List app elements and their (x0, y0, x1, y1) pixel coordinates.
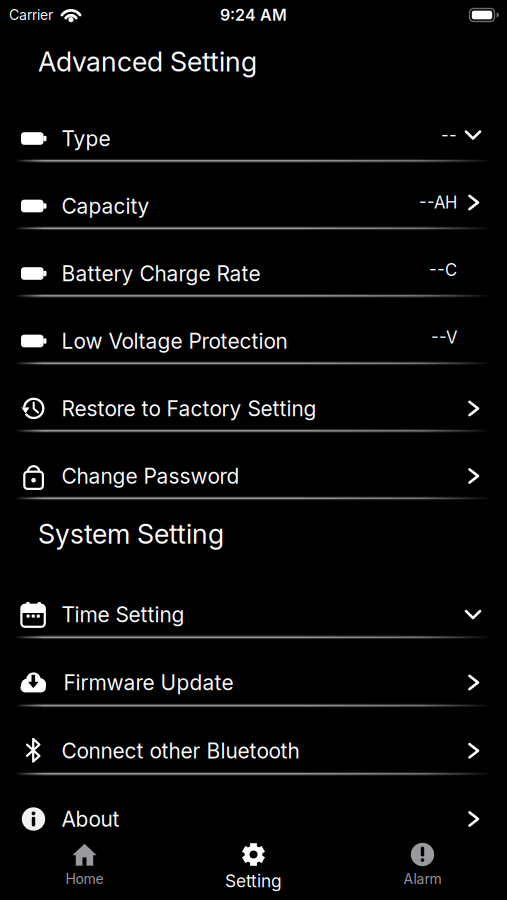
staticText: Setting (225, 870, 282, 891)
button[interactable]: Type (0, 93, 507, 161)
staticText: Connect other Bluetooth (61, 738, 299, 763)
button[interactable]: Change Password (0, 431, 507, 498)
staticText: --V (431, 327, 457, 348)
button[interactable]: Capacity (0, 161, 507, 228)
staticText: Battery Charge Rate (61, 261, 260, 286)
button[interactable]: Alarm (338, 839, 507, 900)
staticText: --AH (419, 192, 457, 213)
button[interactable]: About (0, 774, 507, 839)
staticText: System Setting (38, 518, 224, 550)
staticText: Change Password (61, 463, 239, 489)
button[interactable]: Restore to Factory Setting (0, 363, 507, 431)
button[interactable]: Firmware Update (0, 637, 507, 706)
button[interactable]: Connect other Bluetooth (0, 706, 507, 774)
button[interactable]: Home (0, 839, 169, 900)
staticText: Carrier (9, 6, 53, 23)
staticText: -- (441, 125, 457, 145)
staticText: Time Setting (61, 602, 184, 627)
staticText: Restore to Factory Setting (61, 396, 316, 421)
staticText: Firmware Update (63, 670, 233, 695)
staticText: Advanced Setting (38, 45, 257, 78)
staticText: 9:24 AM (220, 5, 287, 25)
staticText: Alarm (403, 870, 441, 887)
staticText: --C (429, 260, 457, 280)
button[interactable]: Setting (169, 839, 338, 900)
staticText: About (61, 806, 119, 832)
staticText: Capacity (61, 193, 149, 219)
button[interactable]: Low Voltage Protection (0, 296, 507, 363)
button[interactable]: Time Setting (0, 569, 507, 637)
staticText: Home (65, 870, 103, 887)
staticText: Low Voltage Protection (61, 328, 287, 354)
staticText: Type (61, 126, 110, 151)
button[interactable]: Battery Charge Rate (0, 228, 507, 296)
